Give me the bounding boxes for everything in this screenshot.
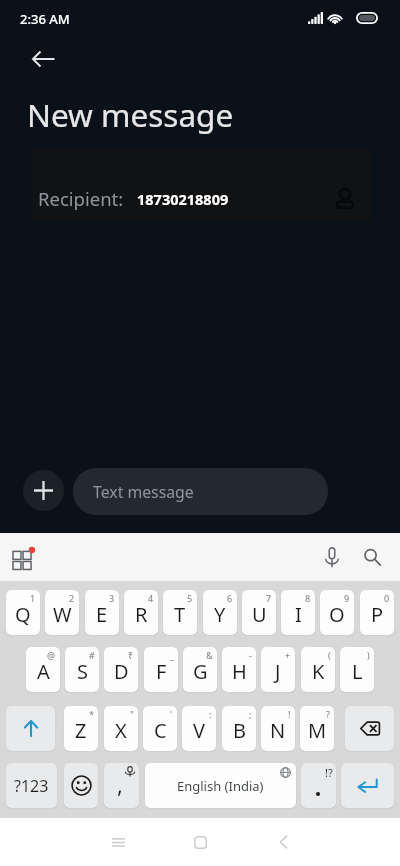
button[interactable]: Home: [176, 818, 224, 866]
staticText: R: [135, 601, 148, 628]
staticText: J: [275, 658, 281, 685]
button[interactable]: Comma: [104, 763, 139, 808]
staticText: Text message: [93, 481, 194, 503]
staticText: +: [285, 649, 291, 661]
button[interactable]: O: [320, 590, 354, 635]
staticText: _: [170, 649, 174, 661]
button[interactable]: Search: [356, 541, 388, 573]
staticText: A: [37, 658, 50, 685]
staticText: ?: [326, 708, 330, 720]
staticText: C: [154, 717, 167, 744]
button[interactable]: P: [360, 590, 394, 635]
button[interactable]: A: [26, 647, 60, 692]
staticText: !: [288, 708, 291, 720]
button[interactable]: G: [183, 647, 217, 692]
staticText: O: [329, 601, 345, 628]
button[interactable]: ?123: [6, 763, 57, 808]
staticText: *: [89, 708, 94, 720]
staticText: ₹: [128, 649, 134, 661]
button[interactable]: Back: [259, 818, 307, 866]
button[interactable]: K: [301, 647, 335, 692]
button[interactable]: Period: [301, 763, 336, 808]
staticText: ?123: [14, 775, 49, 797]
staticText: E: [96, 601, 108, 628]
staticText: W: [53, 601, 72, 628]
staticText: ;: [249, 708, 252, 720]
staticText: G: [193, 658, 208, 685]
staticText: L: [352, 658, 363, 685]
button[interactable]: W: [45, 590, 79, 635]
staticText: New message: [27, 93, 234, 136]
button[interactable]: Keyboard toolbar: [9, 543, 38, 572]
button[interactable]: Shift: [6, 706, 55, 751]
button[interactable]: S: [65, 647, 99, 692]
button[interactable]: English (India): [145, 763, 296, 808]
staticText: F: [156, 658, 167, 685]
staticText: 2: [69, 592, 75, 604]
staticText: P: [371, 601, 384, 628]
button[interactable]: H: [222, 647, 256, 692]
button[interactable]: Y: [203, 590, 237, 635]
staticText: 0: [384, 592, 390, 604]
staticText: Z: [75, 717, 87, 744]
staticText: 8: [305, 592, 311, 604]
staticText: V: [193, 717, 205, 744]
button[interactable]: V: [182, 706, 216, 751]
button[interactable]: J: [261, 647, 295, 692]
staticText: Recipient:: [38, 186, 124, 211]
button[interactable]: Backspace: [345, 706, 394, 751]
staticText: (: [328, 649, 331, 661]
button[interactable]: Enter: [341, 763, 394, 808]
button[interactable]: C: [143, 706, 177, 751]
staticText: -: [249, 649, 252, 661]
staticText: N: [270, 717, 286, 744]
button[interactable]: F: [144, 647, 178, 692]
staticText: ': [170, 708, 173, 720]
button[interactable]: M: [300, 706, 334, 751]
button[interactable]: Emoji: [64, 763, 98, 808]
staticText: @: [47, 649, 56, 661]
staticText: I: [295, 601, 302, 628]
staticText: 2:36 AM: [20, 10, 70, 28]
staticText: S: [77, 658, 88, 685]
button[interactable]: Voice input: [316, 541, 348, 573]
button[interactable]: X: [104, 706, 138, 751]
staticText: 3: [109, 592, 115, 604]
staticText: 1: [30, 592, 36, 604]
staticText: &: [206, 649, 213, 661]
button[interactable]: Back: [21, 36, 66, 81]
button[interactable]: Add attachment: [23, 470, 64, 511]
staticText: 18730218809: [137, 189, 229, 209]
staticText: !?: [325, 765, 333, 780]
staticText: Y: [214, 601, 226, 628]
staticText: ): [367, 649, 370, 661]
staticText: ": [130, 708, 134, 720]
staticText: M: [308, 717, 327, 744]
staticText: B: [233, 717, 246, 744]
staticText: D: [114, 658, 129, 685]
button[interactable]: B: [222, 706, 256, 751]
button[interactable]: Choose contact: [330, 184, 360, 214]
button[interactable]: Recipient:: [31, 148, 370, 222]
staticText: 6: [227, 592, 233, 604]
button[interactable]: Z: [64, 706, 98, 751]
button[interactable]: E: [85, 590, 119, 635]
button[interactable]: U: [242, 590, 276, 635]
staticText: 9: [344, 592, 350, 604]
button[interactable]: L: [340, 647, 374, 692]
staticText: H: [232, 658, 247, 685]
button[interactable]: T: [163, 590, 197, 635]
staticText: U: [252, 601, 267, 628]
staticText: 7: [266, 592, 272, 604]
staticText: #: [89, 649, 95, 661]
staticText: T: [174, 601, 186, 628]
button[interactable]: I: [281, 590, 315, 635]
button[interactable]: Q: [6, 590, 40, 635]
button[interactable]: R: [124, 590, 158, 635]
staticText: Q: [15, 601, 31, 628]
button[interactable]: Recents: [94, 818, 142, 866]
button[interactable]: D: [104, 647, 138, 692]
button[interactable]: N: [261, 706, 295, 751]
staticText: ,: [117, 769, 123, 799]
button[interactable]: Text message: [73, 468, 328, 515]
